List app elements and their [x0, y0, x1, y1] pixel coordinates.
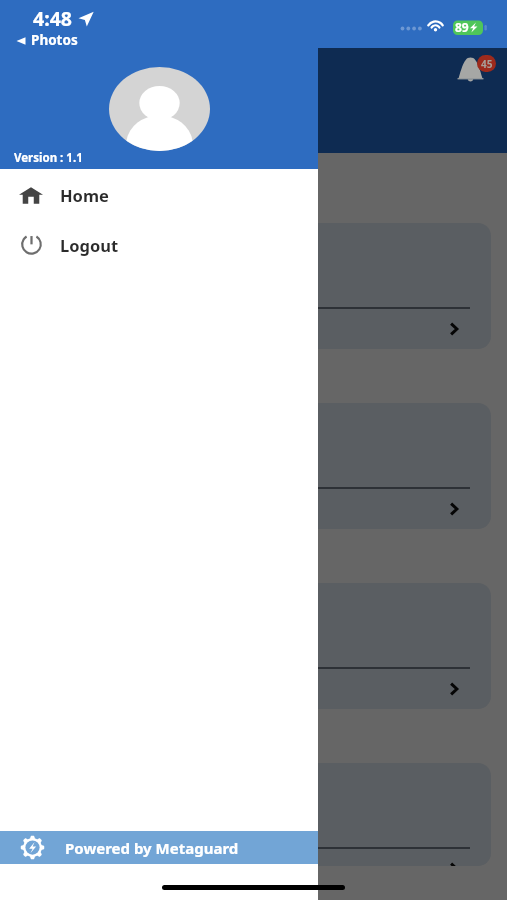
staticText: 89: [455, 19, 469, 35]
button[interactable]: Powered by Metaguard: [0, 831, 318, 864]
staticText: 45: [481, 57, 493, 71]
button[interactable]: Home: [0, 170, 318, 220]
staticText: Photos: [31, 31, 78, 49]
staticText: Version : 1.1: [14, 150, 83, 166]
button[interactable]: Logout: [0, 220, 318, 270]
staticText: Logout: [60, 234, 119, 256]
staticText: Home: [60, 184, 109, 206]
staticText: 4:48: [33, 5, 72, 32]
button[interactable]: Notifications: [449, 48, 495, 94]
button[interactable]: [16, 403, 491, 529]
staticText: Powered by Metaguard: [65, 838, 239, 858]
button[interactable]: [16, 583, 491, 709]
button[interactable]: [16, 763, 491, 866]
button[interactable]: [16, 223, 491, 349]
